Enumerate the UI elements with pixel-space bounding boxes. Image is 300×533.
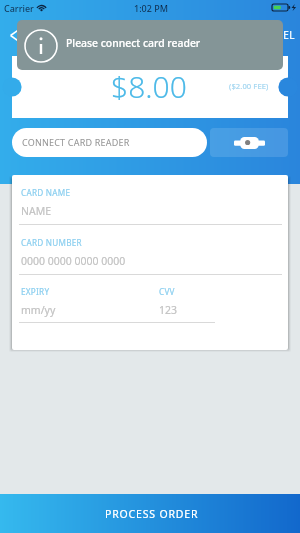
button[interactable]: CONNECT CARD READER — [12, 128, 207, 157]
button[interactable]: PROCESS ORDER — [0, 494, 300, 533]
staticText: Please connect card reader — [66, 36, 201, 50]
button[interactable]: Back — [1, 22, 27, 48]
staticText: 1:02 PM — [134, 2, 168, 14]
staticText: 0000 0000 0000 0000 — [21, 254, 126, 268]
staticText: CANCEL — [255, 28, 295, 42]
staticText: PROCESS ORDER — [105, 507, 199, 521]
staticText: CONNECT CARD READER — [22, 136, 130, 148]
staticText: CVV — [159, 286, 175, 297]
staticText: CARD NAME — [21, 187, 71, 198]
staticText: CARD NUMBER — [21, 237, 82, 248]
staticText: NAME — [21, 204, 52, 218]
button[interactable]: Card reader — [210, 128, 288, 157]
staticText: Carrier — [4, 2, 34, 14]
staticText: $8.00 — [111, 66, 187, 107]
staticText: EXPIRY — [21, 286, 50, 297]
staticText: mm/yy — [21, 303, 56, 317]
staticText: ($2.00 FEE) — [229, 81, 269, 91]
staticText: 123 — [159, 303, 178, 317]
button[interactable]: CANCEL — [255, 28, 295, 42]
